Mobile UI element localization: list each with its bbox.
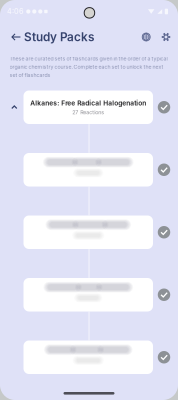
staticText: Study Packs — [24, 30, 94, 44]
button[interactable]: Locked study pack — [23, 340, 153, 374]
staticText: Alkanes: Free Radical Halogenation — [30, 99, 146, 107]
button[interactable]: Completed — [158, 163, 170, 176]
button[interactable]: Settings — [158, 29, 173, 44]
staticText: These are curated sets of flashcards giv… — [9, 55, 167, 78]
button[interactable]: Completed — [158, 101, 170, 113]
button[interactable]: Language — [139, 29, 154, 44]
button[interactable]: Locked study pack — [23, 153, 153, 186]
button[interactable]: Completed — [158, 351, 170, 363]
button[interactable]: Locked study pack — [23, 278, 153, 311]
button[interactable]: Completed — [158, 226, 170, 238]
staticText: 4:06 — [7, 7, 24, 16]
staticText: 27 Reactions — [72, 109, 104, 115]
button[interactable]: Completed — [158, 288, 170, 301]
button[interactable]: Back — [9, 29, 23, 45]
button[interactable]: Alkanes: Free Radical Halogenation — [23, 90, 153, 124]
button[interactable]: Locked study pack — [23, 215, 153, 249]
